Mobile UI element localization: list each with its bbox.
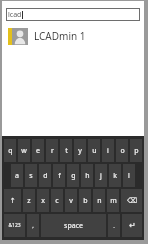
staticText: .	[113, 222, 115, 230]
button[interactable]: k	[109, 164, 121, 187]
button[interactable]: n	[93, 189, 105, 212]
staticText: t	[65, 146, 68, 156]
button[interactable]: s	[25, 164, 37, 187]
button[interactable]: LCADmin 1	[2, 26, 144, 46]
button[interactable]: y	[74, 139, 86, 162]
button[interactable]: ,	[27, 214, 39, 237]
button[interactable]: h	[81, 164, 93, 187]
button[interactable]: l	[123, 164, 135, 187]
staticText: l	[128, 171, 130, 181]
staticText: lcad	[8, 10, 22, 20]
staticText: e	[36, 146, 40, 156]
button[interactable]: x	[37, 189, 49, 212]
staticText: ↵	[129, 221, 136, 230]
button[interactable]: Enter	[122, 214, 142, 237]
button[interactable]: .	[108, 214, 120, 237]
button[interactable]: u	[88, 139, 100, 162]
button[interactable]: m	[107, 189, 119, 212]
button[interactable]: b	[79, 189, 91, 212]
staticText: b	[83, 196, 88, 206]
button[interactable]: i	[102, 139, 114, 162]
staticText: s	[29, 171, 33, 181]
staticText: f	[58, 171, 61, 181]
button[interactable]: Shift	[4, 189, 21, 212]
staticText: w	[21, 146, 27, 156]
staticText: space	[64, 221, 83, 231]
button[interactable]: space	[41, 214, 106, 237]
button[interactable]: z	[23, 189, 35, 212]
staticText: ⌫	[127, 197, 137, 205]
staticText: z	[27, 196, 31, 206]
button[interactable]: q	[4, 139, 16, 162]
staticText: d	[43, 171, 48, 181]
staticText: ↑	[10, 197, 16, 205]
button[interactable]: o	[116, 139, 128, 162]
button[interactable]: g	[67, 164, 79, 187]
button[interactable]: j	[95, 164, 107, 187]
staticText: c	[55, 196, 59, 206]
button[interactable]: Backspace	[121, 189, 142, 212]
button[interactable]: p	[130, 139, 142, 162]
staticText: ,	[32, 222, 34, 230]
staticText: i	[107, 146, 109, 156]
staticText: LCADmin 1	[34, 29, 86, 43]
staticText: h	[85, 171, 90, 181]
button[interactable]: r	[46, 139, 58, 162]
button[interactable]: d	[39, 164, 51, 187]
button[interactable]: e	[32, 139, 44, 162]
staticText: v	[69, 196, 73, 206]
staticText: u	[92, 146, 97, 156]
button[interactable]: t	[60, 139, 72, 162]
staticText: j	[100, 171, 102, 181]
staticText: m	[110, 196, 117, 206]
button[interactable]: w	[18, 139, 30, 162]
staticText: y	[78, 146, 82, 156]
button[interactable]: f	[53, 164, 65, 187]
button[interactable]: Symbols	[4, 214, 25, 237]
staticText: n	[97, 196, 102, 206]
button[interactable]: v	[65, 189, 77, 212]
staticText: &123	[8, 222, 21, 229]
staticText: a	[15, 171, 19, 181]
staticText: x	[41, 196, 45, 206]
staticText: r	[51, 146, 54, 156]
staticText: q	[8, 146, 13, 156]
staticText: p	[134, 146, 139, 156]
button[interactable]: lcad	[6, 8, 140, 21]
button[interactable]: c	[51, 189, 63, 212]
staticText: k	[113, 171, 117, 181]
staticText: o	[120, 146, 125, 156]
staticText: g	[71, 171, 76, 181]
button[interactable]: a	[11, 164, 23, 187]
